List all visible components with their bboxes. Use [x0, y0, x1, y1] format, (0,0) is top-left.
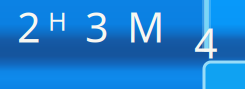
staticText: 3: [85, 0, 109, 54]
staticText: M: [127, 0, 164, 54]
staticText: 4: [194, 15, 218, 70]
staticText: 2: [17, 0, 41, 54]
staticText: H: [48, 4, 67, 38]
